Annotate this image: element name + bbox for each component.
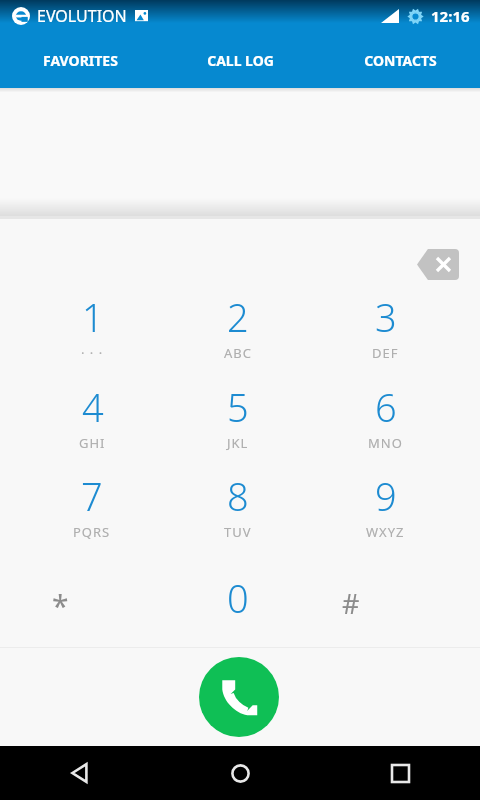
button[interactable]: 2 xyxy=(170,291,306,380)
button[interactable]: 8 xyxy=(170,470,306,559)
staticText: GHI xyxy=(79,434,106,452)
staticText: 9 xyxy=(375,470,397,522)
staticText: 5 xyxy=(227,381,249,433)
staticText: PQRS xyxy=(73,523,111,541)
button[interactable]: 5 xyxy=(170,381,306,470)
button[interactable]: Call xyxy=(199,657,279,737)
button[interactable]: 3 xyxy=(317,291,453,380)
button[interactable]: FAVORITES xyxy=(0,32,160,88)
button[interactable]: * xyxy=(0,559,136,643)
staticText: TUV xyxy=(224,523,252,541)
staticText: # xyxy=(342,585,360,622)
staticText: ABC xyxy=(224,344,252,362)
staticText: 12:16 xyxy=(431,6,470,26)
button[interactable]: Backspace xyxy=(417,249,459,280)
staticText: EVOLUTION xyxy=(37,5,127,27)
staticText: JKL xyxy=(227,434,249,452)
staticText: 8 xyxy=(227,470,249,522)
staticText: 2 xyxy=(227,291,249,343)
staticText: 0 xyxy=(227,572,249,624)
button[interactable]: # xyxy=(290,559,426,643)
button[interactable]: 9 xyxy=(317,470,453,559)
staticText: 4 xyxy=(82,381,104,433)
staticText: WXYZ xyxy=(366,523,405,541)
staticText: FAVORITES xyxy=(43,51,118,70)
staticText: 6 xyxy=(375,381,397,433)
button[interactable]: 7 xyxy=(24,470,160,559)
staticText: · · · xyxy=(81,344,104,362)
staticText: 7 xyxy=(81,470,103,522)
staticText: DEF xyxy=(372,344,399,362)
staticText: * xyxy=(52,585,69,626)
button[interactable]: 1 xyxy=(24,291,160,380)
button[interactable]: Recents xyxy=(320,746,480,800)
button[interactable]: 6 xyxy=(317,381,453,470)
staticText: CONTACTS xyxy=(364,51,437,70)
button[interactable]: CONTACTS xyxy=(320,32,480,88)
button[interactable]: 0 xyxy=(170,559,306,643)
staticText: CALL LOG xyxy=(207,51,274,70)
button[interactable]: 4 xyxy=(24,381,160,470)
button[interactable]: CALL LOG xyxy=(160,32,320,88)
staticText: 1 xyxy=(82,291,104,343)
staticText: 3 xyxy=(375,291,397,343)
button[interactable]: Home xyxy=(160,746,320,800)
staticText: MNO xyxy=(368,434,403,452)
button[interactable]: Back xyxy=(0,746,160,800)
